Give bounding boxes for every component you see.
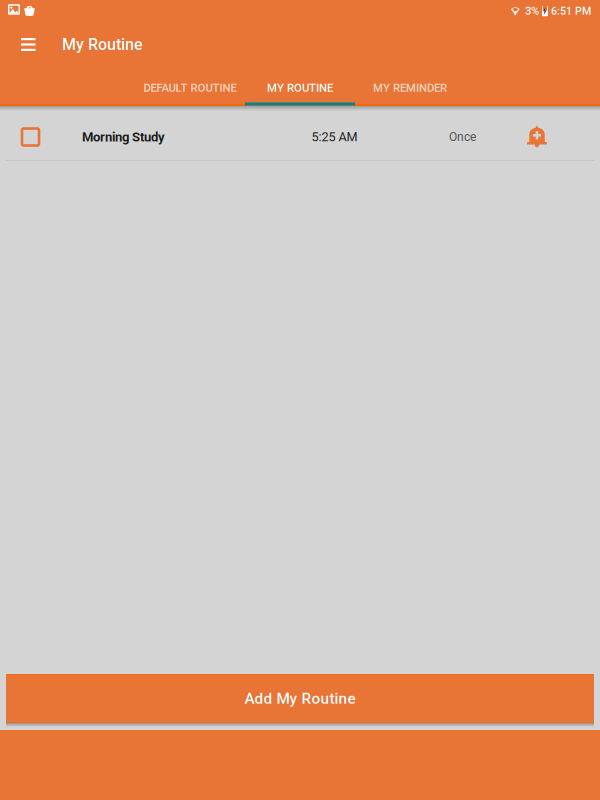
staticText: MY ROUTINE (267, 81, 333, 94)
staticText: Morning Study (82, 129, 165, 145)
staticText: DEFAULT ROUTINE (143, 81, 236, 94)
staticText: 6:51 PM (551, 5, 591, 17)
staticText: 5:25 AM (311, 130, 357, 144)
staticText: 3% (525, 4, 539, 18)
staticText: My Routine (62, 35, 143, 54)
button[interactable]: MY REMINDER (355, 67, 465, 105)
button[interactable]: Add My Routine (6, 674, 594, 723)
button[interactable]: Open navigation menu (5, 22, 49, 66)
button[interactable]: Mark Morning Study complete (1, 109, 82, 165)
button[interactable]: MY ROUTINE (245, 67, 355, 105)
staticText: MY REMINDER (373, 81, 447, 94)
staticText: Add My Routine (244, 689, 355, 707)
button[interactable]: Add reminder for Morning Study (517, 109, 557, 165)
button[interactable]: DEFAULT ROUTINE (135, 67, 245, 105)
staticText: Once (449, 130, 476, 144)
